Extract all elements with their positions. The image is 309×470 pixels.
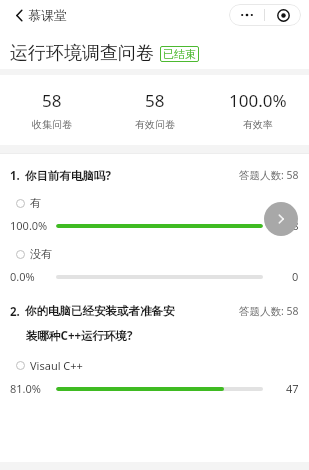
staticText: 有 bbox=[30, 196, 41, 210]
button[interactable]: Back bbox=[6, 2, 32, 28]
staticText: 有效问卷 bbox=[135, 118, 175, 131]
staticText: 慕课堂 bbox=[28, 7, 67, 23]
staticText: 运行环境调查问卷 bbox=[10, 42, 154, 65]
staticText: 答题人数: 58 bbox=[239, 168, 299, 182]
button[interactable]: 没有 bbox=[10, 247, 299, 284]
staticText: 100.0% bbox=[10, 218, 48, 233]
staticText: 装哪种C++运行环境? bbox=[26, 328, 133, 344]
staticText: 已结束 bbox=[163, 47, 196, 61]
staticText: Visaul C++ bbox=[30, 358, 83, 373]
staticText: 收集问卷 bbox=[32, 118, 72, 131]
button[interactable]: Visaul C++ bbox=[10, 358, 299, 396]
button[interactable]: Next question bbox=[264, 202, 298, 236]
staticText: 有效率 bbox=[243, 118, 273, 131]
button[interactable]: More bbox=[229, 4, 264, 26]
staticText: 0 bbox=[292, 269, 299, 284]
staticText: 58 bbox=[42, 89, 62, 112]
staticText: 1. bbox=[10, 168, 20, 184]
staticText: 100.0% bbox=[229, 89, 287, 112]
staticText: 你的电脑已经安装或者准备安 bbox=[25, 304, 239, 318]
staticText: 2. bbox=[10, 304, 20, 320]
staticText: 你目前有电脑吗? bbox=[25, 168, 239, 184]
button[interactable]: 有 bbox=[10, 196, 299, 233]
staticText: 没有 bbox=[30, 247, 52, 261]
staticText: 0.0% bbox=[10, 269, 35, 284]
staticText: 答题人数: 58 bbox=[239, 304, 299, 318]
button[interactable]: Close bbox=[265, 4, 301, 26]
staticText: 58 bbox=[145, 89, 165, 112]
staticText: 47 bbox=[286, 381, 299, 396]
staticText: 81.0% bbox=[10, 381, 41, 396]
staticText: 58 bbox=[286, 218, 299, 233]
